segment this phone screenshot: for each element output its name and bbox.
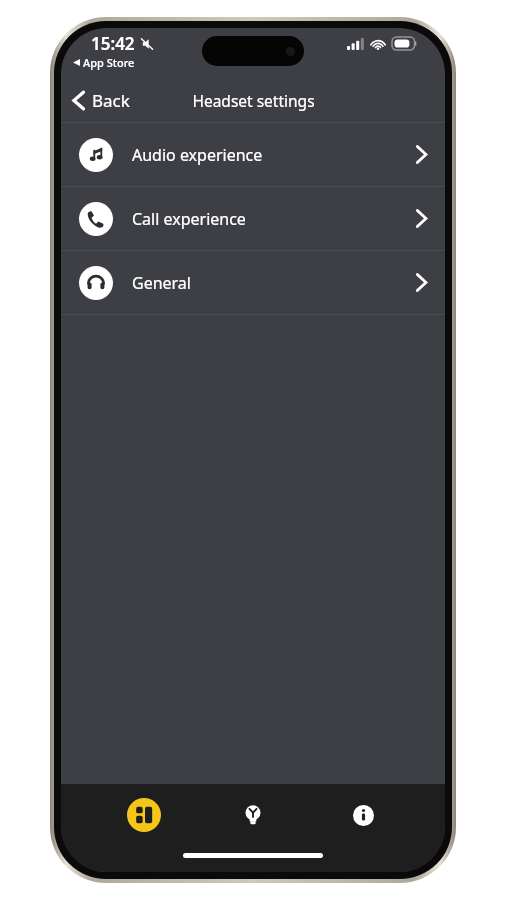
staticText: General: [132, 272, 191, 294]
button[interactable]: Back: [61, 78, 142, 122]
button[interactable]: Device: [117, 788, 171, 842]
staticText: Audio experience: [132, 144, 263, 166]
staticText: Back: [92, 89, 130, 112]
button[interactable]: Tips: [226, 788, 280, 842]
button[interactable]: General: [61, 251, 445, 314]
staticText: Call experience: [132, 208, 246, 230]
button[interactable]: App Store: [73, 55, 135, 70]
staticText: Headset settings: [192, 90, 315, 111]
staticText: 15:42: [91, 32, 135, 55]
staticText: App Store: [83, 55, 135, 70]
button[interactable]: Audio experience: [61, 123, 445, 186]
button[interactable]: Call experience: [61, 187, 445, 250]
button[interactable]: Information: [336, 788, 390, 842]
